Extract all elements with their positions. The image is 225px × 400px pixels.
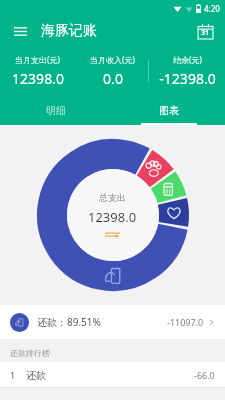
staticText: -11097.0 [167,316,204,328]
button[interactable]: 明细 [0,96,112,125]
staticText: 明细 [46,104,66,117]
staticText: 当月支出(元) [15,54,60,65]
staticText: 结余(元) [173,54,202,65]
staticText: 还款排行榜 [10,348,50,358]
staticText: -12398.0 [159,69,216,88]
button[interactable]: 图表 [112,96,225,125]
staticText: 31 [201,28,210,38]
staticText: 12398.0 [12,69,64,88]
staticText: 海豚记账 [41,22,97,40]
staticText: 还款 [26,369,46,382]
staticText: 12398.0 [88,208,137,226]
staticText: 还款：89.51% [37,315,101,329]
button[interactable]: 还款：89.51% [0,305,225,339]
staticText: 图表 [159,104,179,117]
staticText: 0.0 [103,69,123,88]
button[interactable]: Calendar [194,20,216,42]
staticText: -66.0 [194,369,215,381]
staticText: 总支出 [99,192,126,203]
button[interactable]: 1 [0,362,225,388]
button[interactable]: Menu [9,20,31,42]
staticText: 当月收入(元) [90,54,135,65]
staticText: 1 [10,369,16,381]
staticText: 4:20 [204,3,220,14]
